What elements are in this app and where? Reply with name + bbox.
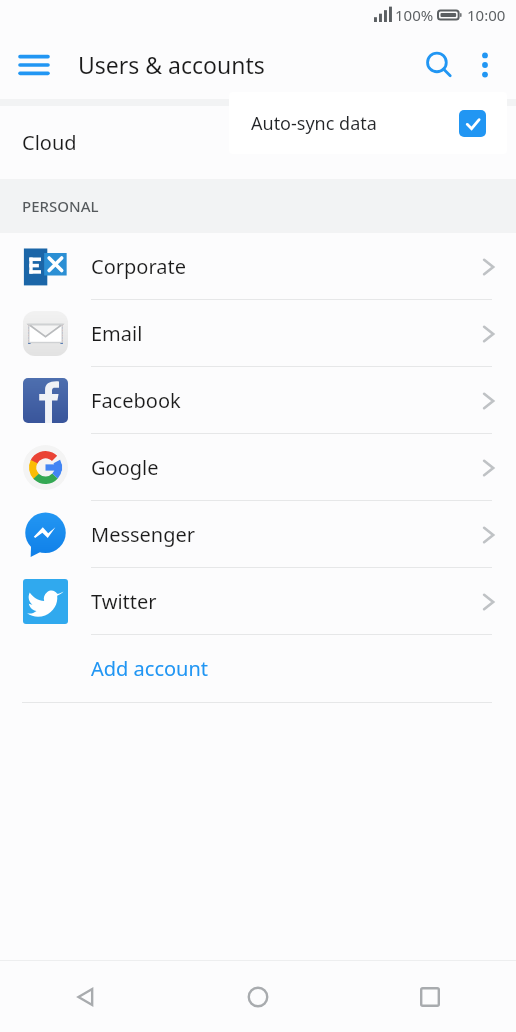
button[interactable]: Search <box>416 42 462 88</box>
staticText: Facebook <box>91 387 181 414</box>
button[interactable]: Email <box>0 300 516 367</box>
button[interactable]: Home <box>172 961 344 1032</box>
staticText: Messenger <box>91 521 196 548</box>
staticText: Corporate <box>91 253 186 280</box>
staticText: Cloud <box>22 129 77 156</box>
button[interactable]: Messenger <box>0 501 516 568</box>
button[interactable]: Back <box>0 961 172 1032</box>
button[interactable]: Twitter <box>0 568 516 635</box>
button[interactable]: Cloud <box>0 106 516 179</box>
staticText: Add account <box>91 655 209 682</box>
staticText: Google <box>91 454 159 481</box>
staticText: 100% <box>395 5 434 25</box>
button[interactable]: Recent apps <box>344 961 516 1032</box>
button[interactable]: Auto-sync data <box>229 92 507 154</box>
button[interactable]: More options <box>462 42 508 88</box>
button[interactable]: Corporate <box>0 233 516 300</box>
staticText: Auto-sync data <box>251 111 377 136</box>
staticText: Twitter <box>91 588 157 615</box>
button[interactable]: Facebook <box>0 367 516 434</box>
staticText: 10:00 <box>467 5 506 25</box>
staticText: Users & accounts <box>78 49 265 80</box>
button[interactable]: Menu <box>14 45 54 85</box>
staticText: PERSONAL <box>22 196 99 216</box>
button[interactable]: Google <box>0 434 516 501</box>
staticText: Email <box>91 320 143 347</box>
button[interactable]: Add account <box>0 635 516 702</box>
